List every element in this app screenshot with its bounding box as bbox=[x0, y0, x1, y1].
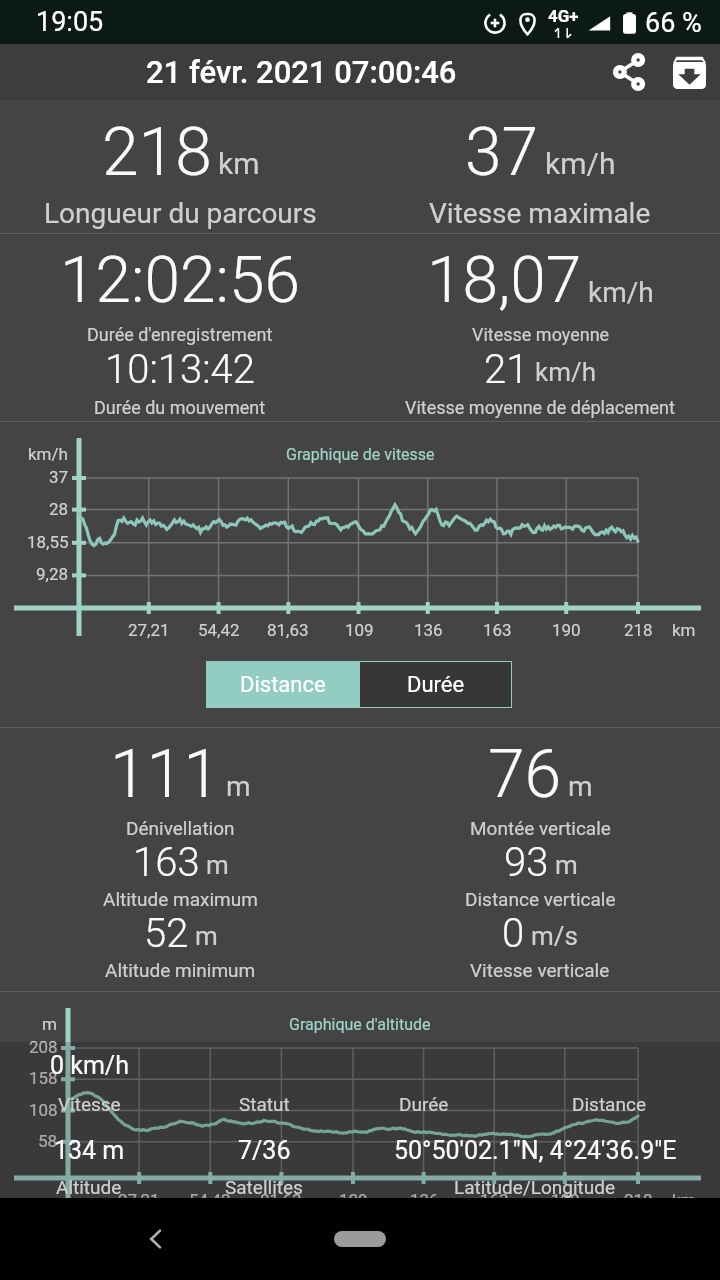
staticText: Durée bbox=[399, 1093, 449, 1115]
staticText: 37 bbox=[465, 114, 539, 191]
staticText: Vitesse bbox=[58, 1093, 121, 1115]
staticText: 93 bbox=[504, 839, 549, 886]
staticText: Durée d'enregistrement bbox=[87, 324, 273, 345]
staticText: m bbox=[42, 1014, 57, 1034]
staticText: 0 km/h bbox=[50, 1051, 129, 1080]
staticText: 21 févr. 2021 07:00:46 bbox=[146, 54, 457, 90]
staticText: m/s bbox=[531, 921, 578, 951]
staticText: 58 bbox=[38, 1131, 58, 1151]
staticText: Vitesse moyenne de déplacement bbox=[405, 397, 675, 418]
staticText: Dénivellation bbox=[126, 817, 235, 839]
staticText: Statut bbox=[239, 1093, 290, 1115]
staticText: Vitesse maximale bbox=[429, 197, 651, 230]
button[interactable]: Partager bbox=[600, 44, 657, 100]
staticText: Satellites bbox=[225, 1176, 303, 1198]
staticText: 190 bbox=[552, 620, 581, 640]
staticText: Vitesse moyenne bbox=[472, 324, 610, 345]
staticText: 21 bbox=[484, 346, 529, 393]
staticText: 27,21 bbox=[128, 620, 170, 640]
staticText: 163 bbox=[133, 839, 200, 886]
staticText: 54,42 bbox=[198, 620, 240, 640]
staticText: 163 bbox=[483, 620, 512, 640]
staticText: km bbox=[672, 1190, 696, 1210]
staticText: km/h bbox=[28, 444, 68, 464]
staticText: 0 bbox=[502, 910, 525, 957]
staticText: 134 m bbox=[54, 1136, 125, 1165]
staticText: Latitude/Longitude bbox=[454, 1176, 616, 1198]
staticText: Distance bbox=[240, 672, 326, 698]
staticText: m bbox=[195, 921, 218, 951]
staticText: 81,63 bbox=[260, 1190, 302, 1210]
staticText: 27,21 bbox=[118, 1190, 160, 1210]
staticText: 190 bbox=[551, 1190, 580, 1210]
button[interactable]: Distance bbox=[206, 661, 359, 708]
staticText: 76 bbox=[488, 736, 562, 813]
staticText: km bbox=[218, 146, 260, 181]
staticText: 52 bbox=[144, 910, 189, 957]
staticText: 218 bbox=[102, 114, 212, 191]
staticText: 81,63 bbox=[267, 620, 309, 640]
staticText: km/h bbox=[545, 146, 616, 181]
staticText: 12:02:56 bbox=[60, 243, 300, 318]
staticText: 109 bbox=[345, 620, 374, 640]
staticText: 218 bbox=[624, 620, 653, 640]
staticText: Altitude minimum bbox=[105, 959, 256, 981]
staticText: km bbox=[672, 620, 696, 640]
staticText: 208 bbox=[29, 1037, 58, 1057]
staticText: 37 bbox=[49, 467, 69, 487]
staticText: Longueur du parcours bbox=[44, 197, 317, 230]
staticText: 218 bbox=[624, 1190, 653, 1210]
staticText: m bbox=[206, 850, 229, 880]
staticText: Vitesse verticale bbox=[470, 959, 610, 981]
staticText: km/h bbox=[535, 357, 597, 387]
staticText: Graphique d'altitude bbox=[289, 1015, 431, 1034]
staticText: 163 bbox=[480, 1190, 509, 1210]
staticText: 109 bbox=[339, 1190, 368, 1210]
staticText: 18,07 bbox=[427, 243, 582, 318]
staticText: Altitude bbox=[56, 1176, 122, 1198]
staticText: 10:13:42 bbox=[105, 346, 255, 393]
staticText: 136 bbox=[410, 1190, 439, 1210]
staticText: 19:05 bbox=[36, 6, 104, 38]
staticText: 28 bbox=[49, 499, 69, 519]
staticText: Durée bbox=[407, 672, 465, 698]
staticText: 4G+ bbox=[548, 6, 579, 26]
staticText: 111 bbox=[110, 736, 220, 813]
staticText: m bbox=[568, 770, 593, 803]
staticText: 136 bbox=[414, 620, 443, 640]
staticText: m bbox=[555, 850, 578, 880]
staticText: 158 bbox=[29, 1068, 58, 1088]
staticText: Graphique de vitesse bbox=[286, 445, 435, 464]
staticText: 9,28 bbox=[36, 564, 69, 584]
staticText: 18,55 bbox=[27, 532, 69, 552]
button[interactable]: Exporter bbox=[661, 44, 718, 100]
staticText: Altitude maximum bbox=[103, 888, 258, 910]
staticText: Distance bbox=[572, 1093, 646, 1115]
button[interactable]: Retour bbox=[130, 1213, 182, 1265]
button[interactable]: Accueil bbox=[300, 1216, 420, 1262]
staticText: 7/36 bbox=[238, 1136, 291, 1165]
staticText: 54,42 bbox=[189, 1190, 231, 1210]
staticText: 108 bbox=[29, 1100, 58, 1120]
staticText: 50°50'02.1"N, 4°24'36.9"E bbox=[394, 1136, 677, 1165]
staticText: Distance verticale bbox=[465, 888, 616, 910]
staticText: m bbox=[226, 770, 251, 803]
staticText: km/h bbox=[588, 276, 654, 309]
staticText: Montée verticale bbox=[470, 817, 611, 839]
button[interactable]: Durée bbox=[360, 662, 511, 707]
staticText: Durée du mouvement bbox=[94, 397, 266, 418]
staticText: 66 % bbox=[645, 7, 702, 39]
